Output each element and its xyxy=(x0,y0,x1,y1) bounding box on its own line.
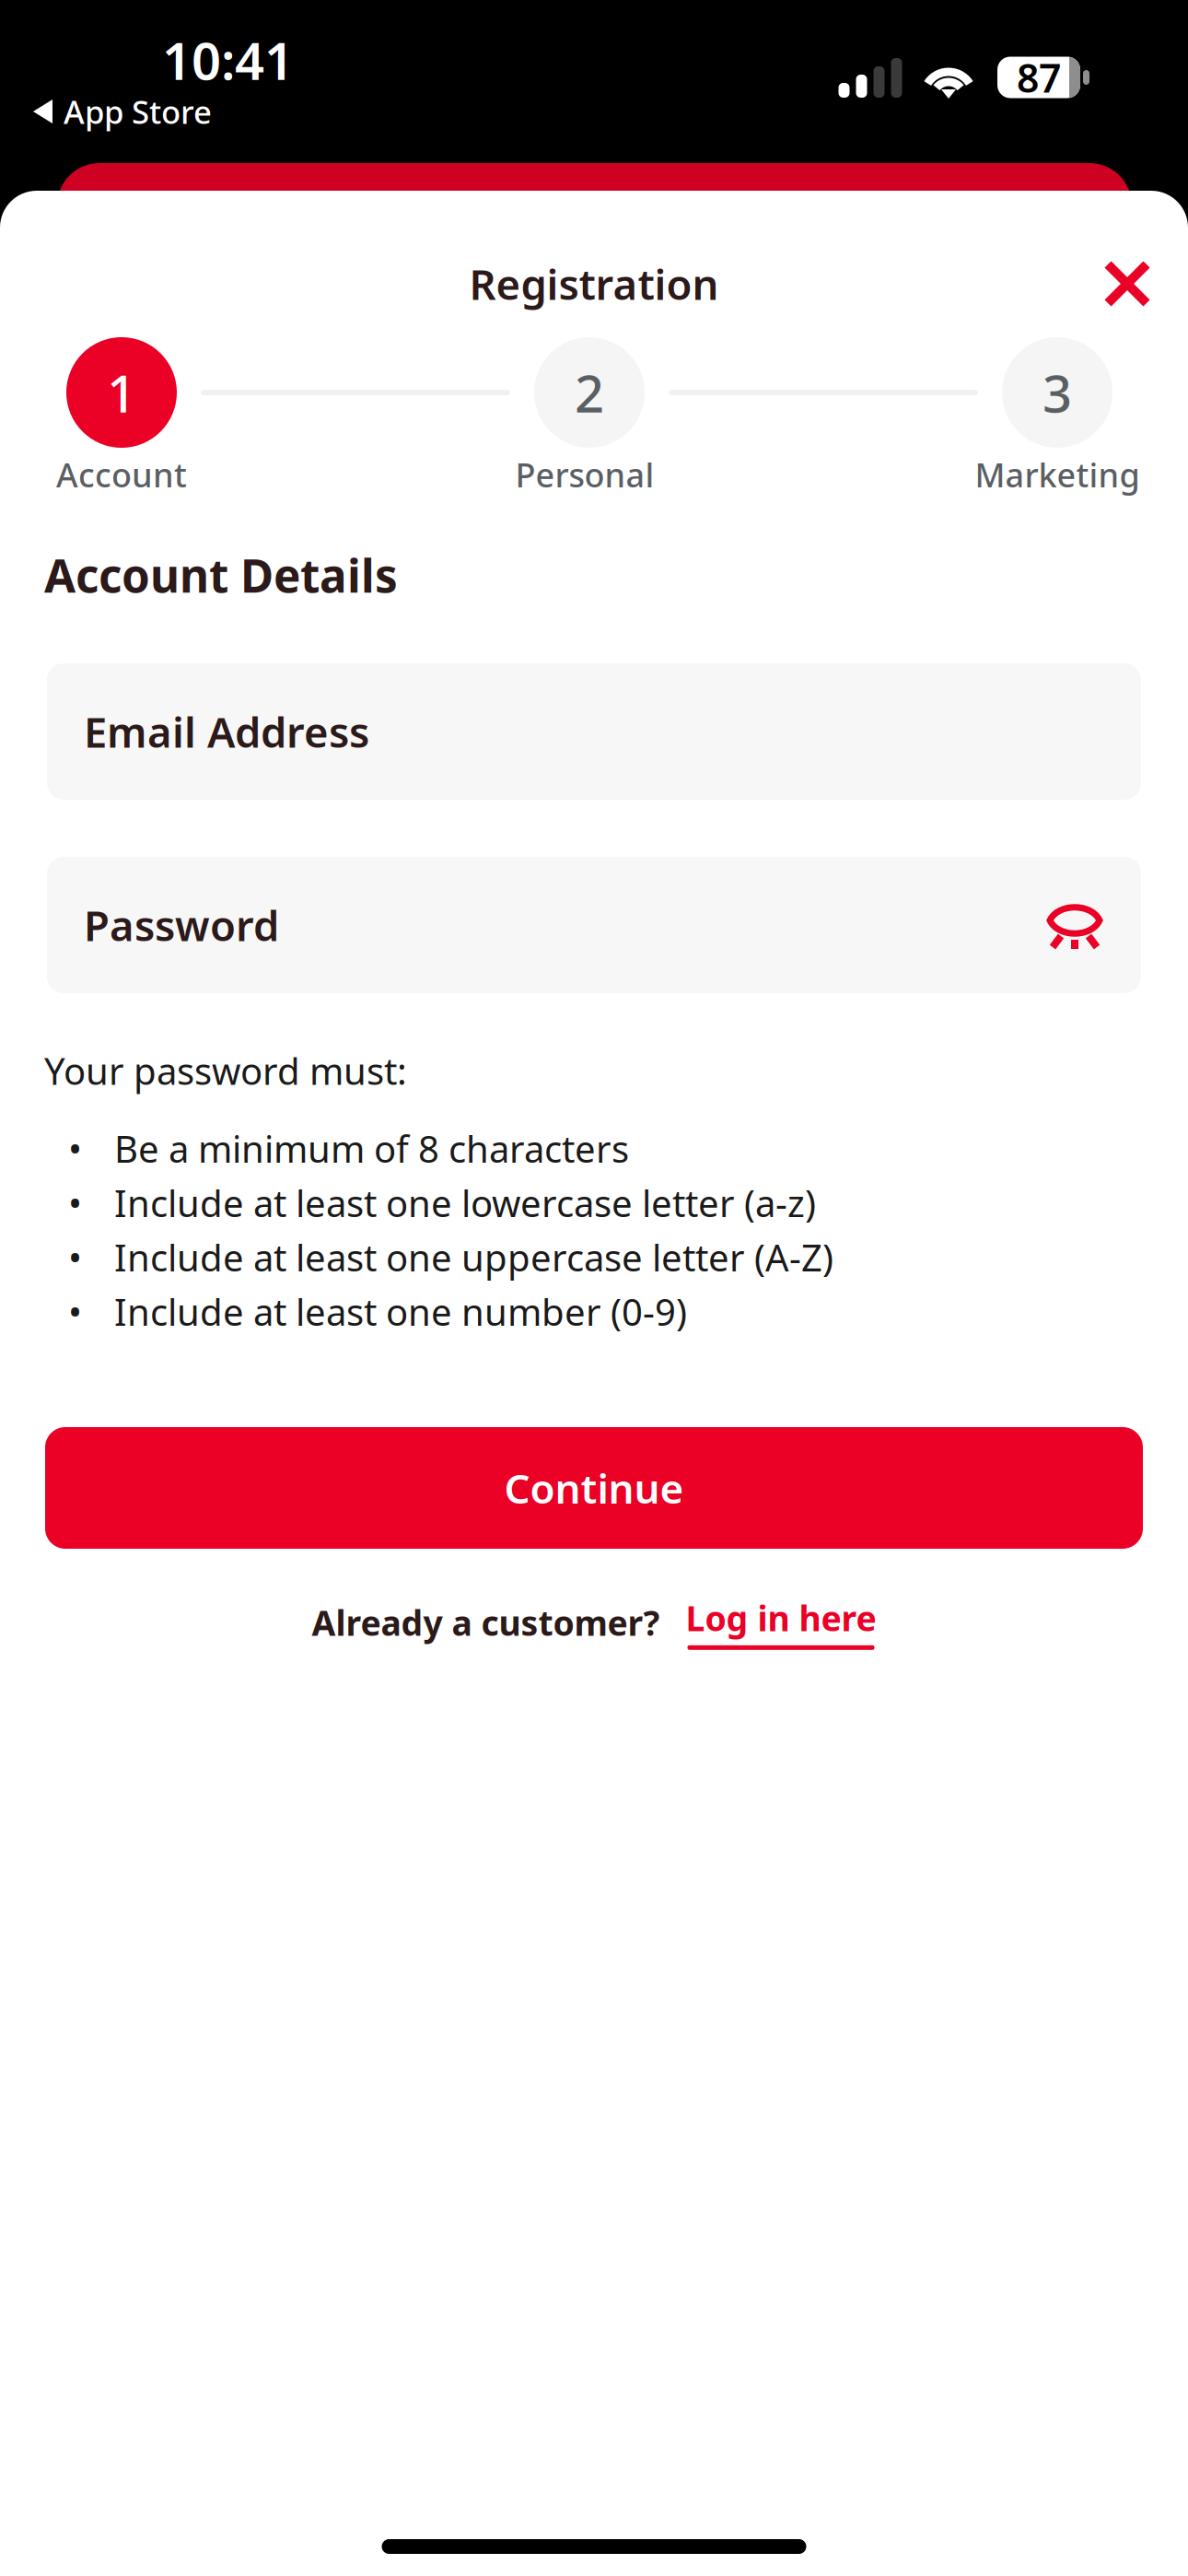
staticText: Personal xyxy=(515,452,654,496)
staticText: Be a minimum of 8 characters xyxy=(114,1124,629,1173)
staticText: Account xyxy=(56,452,187,496)
button[interactable]: Show password xyxy=(1045,900,1104,950)
button[interactable]: Already a customer? xyxy=(0,1593,1188,1652)
staticText: • xyxy=(68,1287,82,1336)
button[interactable]: App Store xyxy=(0,91,1188,132)
staticText: Registration xyxy=(469,256,719,311)
button[interactable]: Close xyxy=(1086,242,1169,325)
staticText: Log in here xyxy=(686,1595,876,1641)
button[interactable]: Continue xyxy=(45,1427,1143,1549)
staticText: 2 xyxy=(575,358,604,427)
staticText: Include at least one lowercase letter (a… xyxy=(114,1178,816,1227)
staticText: • xyxy=(68,1178,82,1227)
staticText: Password xyxy=(84,897,279,953)
staticText: Include at least one number (0-9) xyxy=(114,1287,687,1336)
staticText: Marketing xyxy=(975,452,1140,496)
staticText: • xyxy=(68,1124,82,1173)
staticText: 1 xyxy=(107,358,136,427)
staticText: Email Address xyxy=(84,704,369,759)
staticText: • xyxy=(68,1233,82,1282)
staticText: Continue xyxy=(504,1461,684,1515)
staticText: Account Details xyxy=(44,545,398,605)
staticText: 10:41 xyxy=(162,26,294,94)
staticText: Already a customer? xyxy=(312,1600,660,1645)
staticText: App Store xyxy=(64,90,212,133)
staticText: Include at least one uppercase letter (A… xyxy=(114,1233,833,1282)
staticText: 3 xyxy=(1042,358,1072,427)
staticText: Your password must: xyxy=(44,1046,407,1095)
staticText: 87 xyxy=(1017,51,1061,104)
